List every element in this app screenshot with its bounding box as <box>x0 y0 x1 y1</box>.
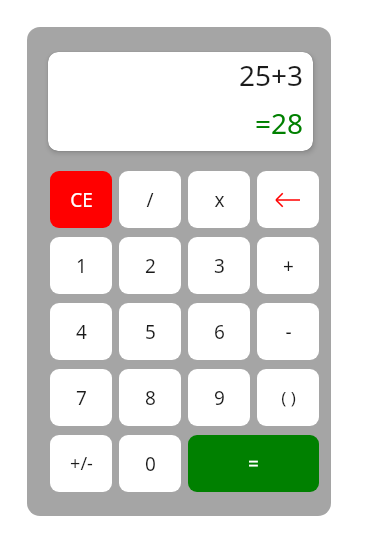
button[interactable]: 1 <box>50 237 112 294</box>
button[interactable]: 9 <box>188 369 250 426</box>
staticText: =28 <box>254 104 303 142</box>
staticText: ( ) <box>281 386 296 409</box>
button[interactable]: 0 <box>119 435 181 492</box>
staticText: 3 <box>214 253 225 279</box>
staticText: 1 <box>76 253 87 279</box>
button[interactable]: Backspace <box>257 171 319 228</box>
button[interactable]: +/- <box>50 435 112 492</box>
staticText: 7 <box>76 385 87 411</box>
button[interactable]: - <box>257 303 319 360</box>
staticText: = <box>248 451 259 477</box>
staticText: 25+3 <box>238 56 303 94</box>
button[interactable]: 2 <box>119 237 181 294</box>
staticText: 9 <box>214 385 225 411</box>
button[interactable]: 3 <box>188 237 250 294</box>
staticText: 5 <box>145 319 156 345</box>
button[interactable]: CE <box>50 171 112 228</box>
button[interactable]: 8 <box>119 369 181 426</box>
button[interactable]: 5 <box>119 303 181 360</box>
button[interactable]: x <box>188 171 250 228</box>
button[interactable]: ( ) <box>257 369 319 426</box>
button[interactable]: 7 <box>50 369 112 426</box>
staticText: +/- <box>70 451 93 476</box>
staticText: x <box>214 187 225 213</box>
staticText: + <box>283 253 294 279</box>
staticText: - <box>285 319 292 345</box>
button[interactable]: = <box>188 435 319 492</box>
staticText: 0 <box>145 451 156 477</box>
staticText: 2 <box>145 253 156 279</box>
button[interactable]: 4 <box>50 303 112 360</box>
button[interactable]: 6 <box>188 303 250 360</box>
staticText: CE <box>70 187 93 213</box>
staticText: 8 <box>145 385 156 411</box>
button[interactable]: + <box>257 237 319 294</box>
button[interactable]: / <box>119 171 181 228</box>
staticText: 4 <box>76 319 87 345</box>
staticText: / <box>146 187 154 213</box>
staticText: 6 <box>214 319 225 345</box>
